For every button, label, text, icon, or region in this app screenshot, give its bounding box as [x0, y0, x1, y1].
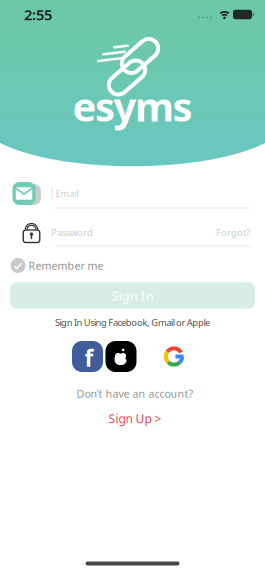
staticText: Sign In Using Facebook, Gmail or Apple — [55, 316, 210, 329]
staticText: Sign Up > — [108, 410, 161, 426]
staticText: f — [84, 343, 93, 373]
staticText: Remember me — [28, 258, 103, 273]
button[interactable]: Remember me — [0, 0, 265, 574]
button[interactable]: Sign Up > — [108, 410, 161, 426]
staticText: esyms — [72, 79, 192, 132]
staticText: Email — [55, 187, 78, 200]
button[interactable]: Forgot? — [216, 226, 250, 239]
button[interactable]: Sign In — [10, 282, 255, 309]
staticText: Don't have an account? — [76, 386, 193, 401]
button[interactable]: Sign in with Facebook — [72, 341, 103, 372]
button[interactable]: Sign in with Google — [164, 346, 184, 367]
button[interactable]: Sign in with Apple — [105, 341, 136, 372]
staticText: Password — [51, 226, 93, 239]
staticText: Sign In — [111, 287, 153, 304]
staticText: 2:55 — [24, 5, 52, 24]
staticText: Forgot? — [216, 226, 250, 239]
